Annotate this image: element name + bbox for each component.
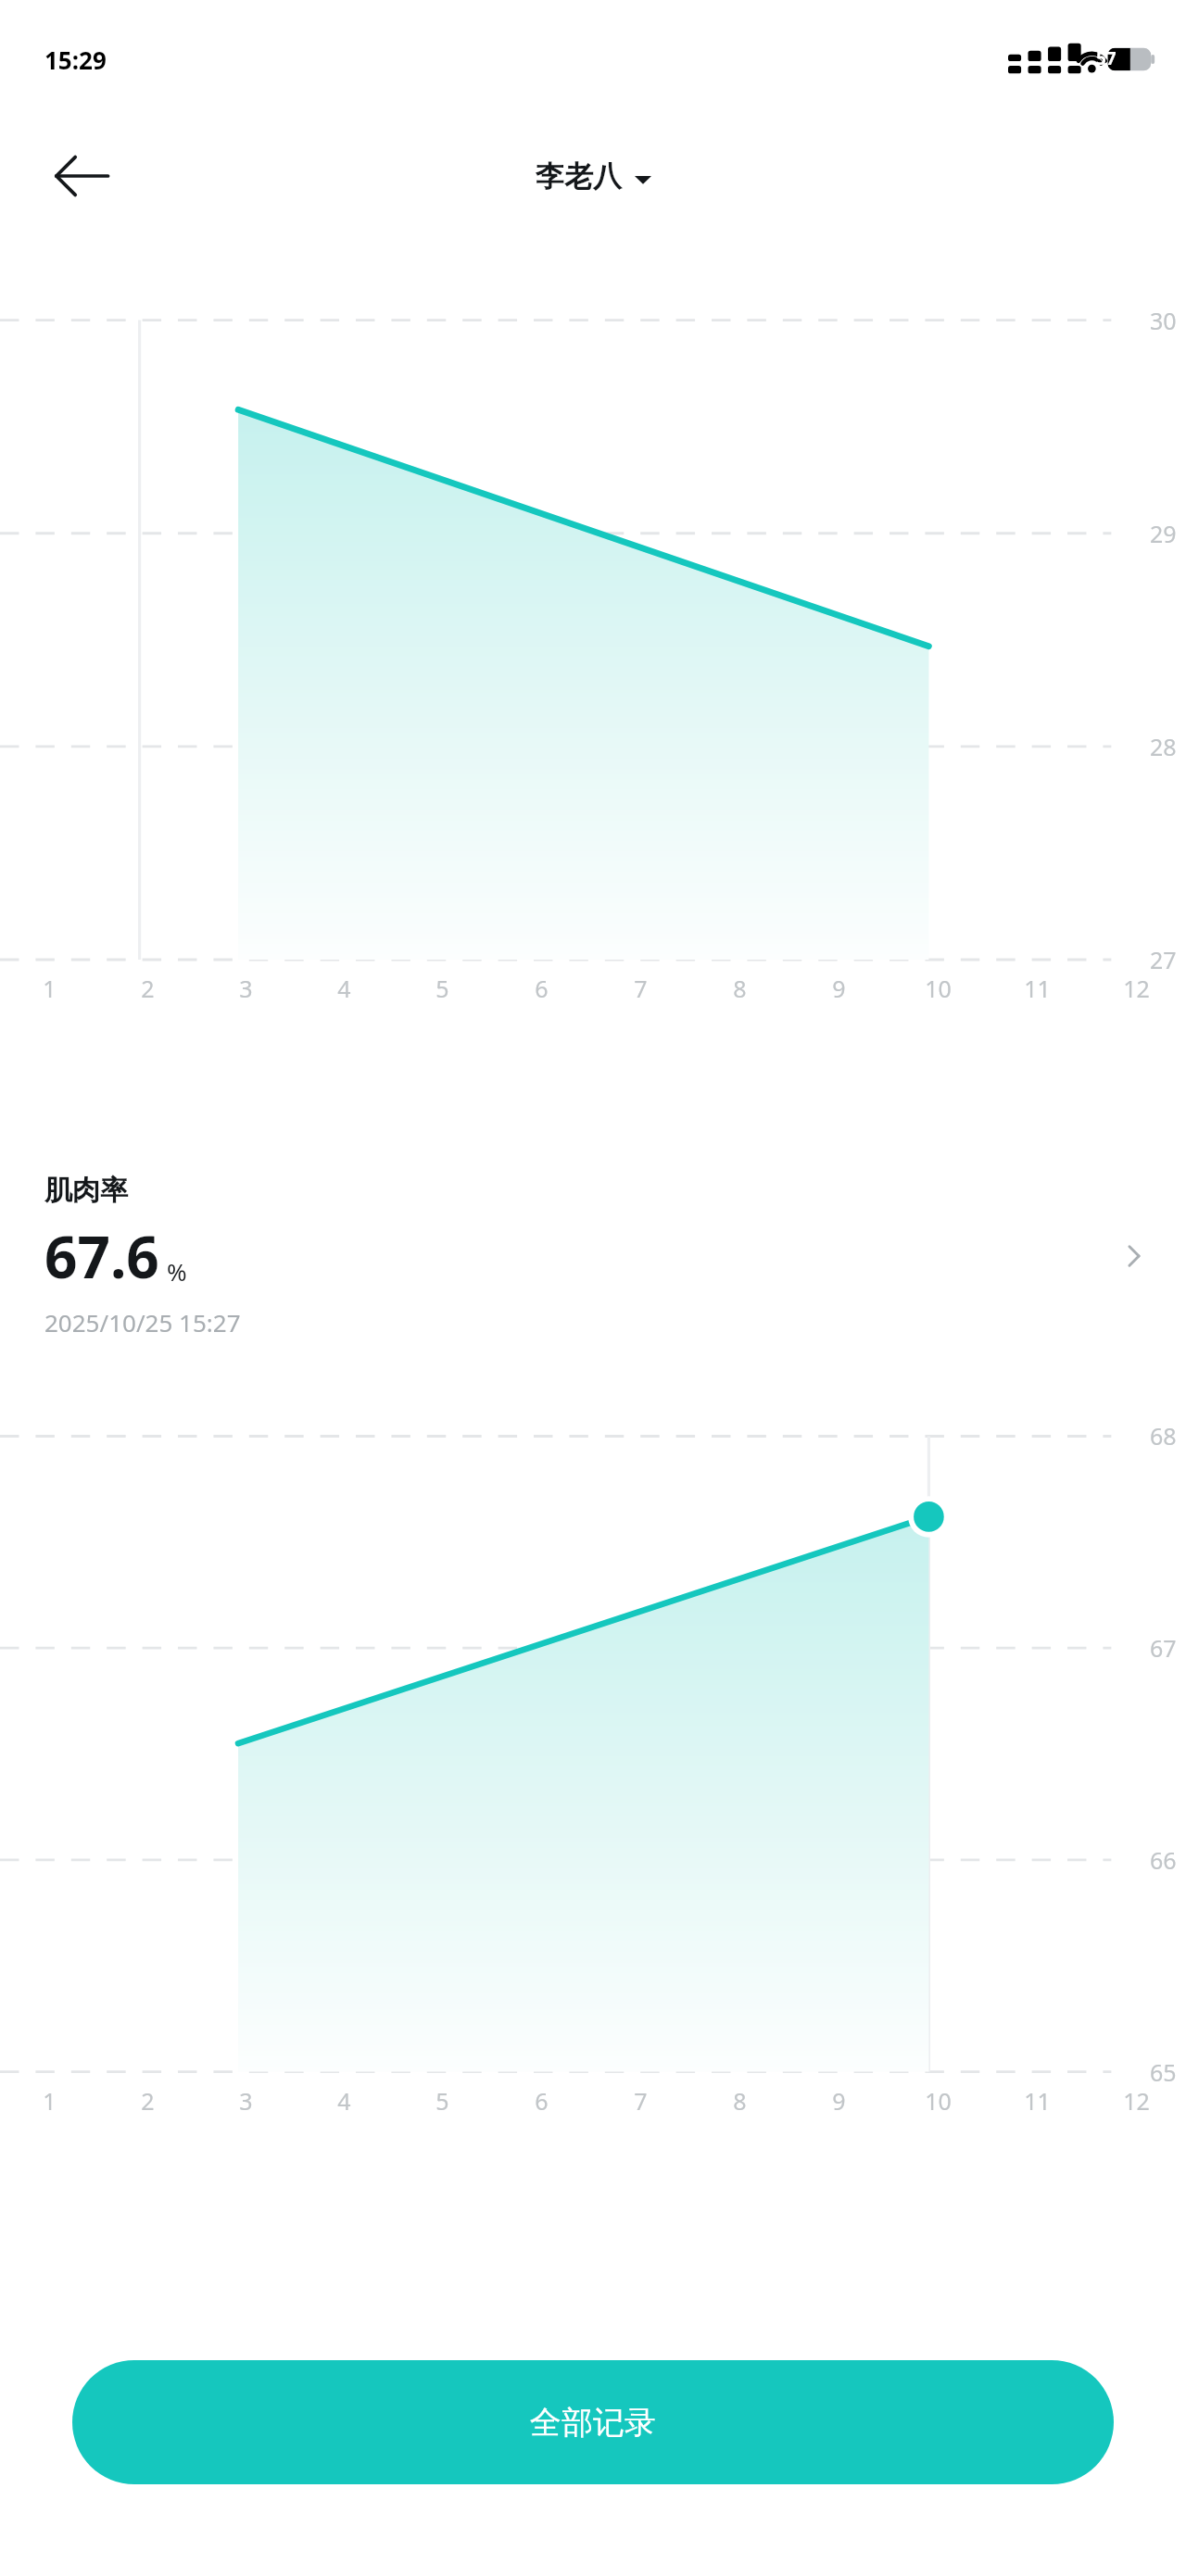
staticText: 28 bbox=[1150, 731, 1177, 762]
staticText: 12 bbox=[1123, 973, 1150, 1004]
staticText: 2 bbox=[141, 2085, 155, 2117]
staticText: 2 bbox=[141, 973, 155, 1004]
staticText: 65 bbox=[1150, 2056, 1177, 2088]
staticText: 8 bbox=[733, 2085, 747, 2117]
staticText: 11 bbox=[1024, 973, 1051, 1004]
staticText: 67 bbox=[1150, 1632, 1177, 1664]
staticText: 5 bbox=[435, 973, 449, 1004]
staticText: 68 bbox=[1150, 1420, 1177, 1451]
staticText: 9 bbox=[832, 973, 846, 1004]
staticText: 6 bbox=[535, 2085, 549, 2117]
button[interactable]: 全部记录 bbox=[72, 2360, 1114, 2484]
staticText: 3 bbox=[239, 2085, 253, 2117]
staticText: 全部记录 bbox=[530, 2403, 656, 2443]
staticText: % bbox=[167, 1255, 187, 1288]
staticText: 27 bbox=[1150, 944, 1177, 975]
staticText: 1 bbox=[43, 973, 57, 1004]
button[interactable]: Back bbox=[50, 145, 113, 207]
staticText: 29 bbox=[1150, 518, 1177, 549]
button[interactable]: 李老八 bbox=[536, 158, 651, 195]
staticText: 10 bbox=[925, 973, 952, 1004]
staticText: 66 bbox=[1150, 1844, 1177, 1876]
staticText: 1 bbox=[43, 2085, 57, 2117]
staticText: 12 bbox=[1123, 2085, 1150, 2117]
staticText: 2025/10/25 15:27 bbox=[44, 1306, 241, 1338]
staticText: 11 bbox=[1024, 2085, 1051, 2117]
staticText: 6 bbox=[535, 973, 549, 1004]
staticText: 30 bbox=[1150, 305, 1177, 336]
staticText: 57 bbox=[1096, 46, 1117, 70]
staticText: 67.6 bbox=[44, 1217, 159, 1295]
staticText: 肌肉率 bbox=[44, 1173, 128, 1208]
staticText: 8 bbox=[733, 973, 747, 1004]
staticText: 李老八 bbox=[536, 158, 622, 195]
staticText: 15:29 bbox=[44, 44, 107, 76]
staticText: 10 bbox=[925, 2085, 952, 2117]
staticText: 7 bbox=[634, 2085, 648, 2117]
staticText: 9 bbox=[832, 2085, 846, 2117]
staticText: 5 bbox=[435, 2085, 449, 2117]
staticText: 4 bbox=[337, 973, 351, 1004]
staticText: 3 bbox=[239, 973, 253, 1004]
button[interactable]: 肌肉率 bbox=[0, 1163, 1186, 1348]
staticText: 4 bbox=[337, 2085, 351, 2117]
staticText: 7 bbox=[634, 973, 648, 1004]
